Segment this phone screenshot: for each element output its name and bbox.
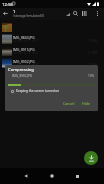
staticText: Hide [82,101,90,106]
staticText: 12:58 [2,2,13,8]
button[interactable]: IMG_8915.JPG [0,44,104,56]
staticText: IMG_8902.JPG [13,59,35,63]
button[interactable]: Save [84,151,98,165]
button[interactable]: Cancel [60,98,78,108]
staticText: 13% [88,74,95,78]
staticText: IMG_8843.JPG [13,35,35,39]
button[interactable]: Sort [62,8,73,19]
staticText: 2.3 MB [88,51,98,55]
staticText: Compressing [8,67,34,73]
staticText: 12 Sept 2019 18:21 [13,63,39,67]
staticText: IMG_8915.JPG [13,47,35,51]
staticText: /storage/emulated/0 [13,14,45,18]
button[interactable]: Keeping the screen turned on [9,87,60,95]
button[interactable]: Home [46,170,58,182]
staticText: 1 [13,9,16,15]
button[interactable]: Search [70,8,81,19]
staticText: Cancel [63,101,75,106]
staticText: IMG_8902.JPG [12,74,33,78]
staticText: Keeping the screen turned on [16,89,60,93]
button[interactable]: Back [20,170,32,182]
button[interactable]: Change view [79,8,90,19]
staticText: 2.3 MB [88,63,98,67]
button[interactable]: Back [0,8,11,19]
staticText: 12 Sept 2019 18:21 [13,51,39,55]
staticText: 2.3 MB [88,39,98,43]
staticText: 12 Sept 2019 18:21 [13,39,39,43]
button[interactable]: Hide [79,98,93,108]
button[interactable]: IMG_8843.JPG [0,32,104,44]
button[interactable]: Recents [71,170,83,182]
button[interactable]: IMG_8902.JPG [0,56,104,68]
button[interactable]: More options [92,8,103,19]
button[interactable] [0,20,104,32]
